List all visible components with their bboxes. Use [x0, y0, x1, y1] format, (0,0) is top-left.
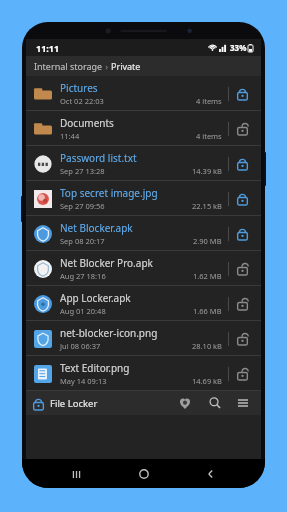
staticText: 22.15 kB	[192, 201, 222, 211]
button[interactable]: Top secret image.jpg	[26, 181, 261, 216]
button[interactable]: Documents	[26, 111, 261, 146]
staticText: 11:44	[60, 131, 80, 141]
staticText: 14.39 kB	[192, 166, 222, 176]
staticText: App Locker.apk	[60, 291, 131, 305]
staticText: Documents	[60, 116, 114, 130]
button[interactable]: Internal storage	[26, 56, 261, 76]
button[interactable]: Home	[130, 460, 158, 488]
button[interactable]: Upgrade	[174, 392, 196, 414]
button[interactable]: Unlocked	[229, 286, 255, 321]
button[interactable]: Menu	[232, 392, 254, 414]
button[interactable]: Pictures	[26, 76, 261, 111]
staticText: Private	[111, 60, 141, 72]
staticText: Sep 08 20:17	[60, 236, 105, 246]
staticText: 1.62 MB	[193, 271, 222, 281]
staticText: 11:11	[36, 42, 60, 54]
staticText: Sep 27 13:28	[60, 166, 105, 176]
staticText: Text Editor.png	[60, 361, 130, 375]
staticText: 14.69 kB	[192, 376, 222, 386]
button[interactable]: net-blocker-icon.png	[26, 321, 261, 356]
button[interactable]: Unlocked	[229, 356, 255, 391]
button[interactable]: Unlocked	[229, 111, 255, 146]
staticText: Aug 01 20:48	[60, 306, 106, 316]
button[interactable]: Recents	[62, 460, 90, 488]
staticText: ›	[103, 60, 111, 72]
staticText: Net Blocker Pro.apk	[60, 256, 153, 270]
button[interactable]: Back	[197, 460, 225, 488]
staticText: 4 items	[196, 131, 222, 141]
button[interactable]: Net Blocker Pro.apk	[26, 251, 261, 286]
staticText: Password list.txt	[60, 151, 137, 165]
button[interactable]: File Locker	[33, 397, 98, 410]
staticText: Sep 27 09:56	[60, 201, 105, 211]
staticText: Jul 08 06:37	[60, 341, 101, 351]
staticText: 33%	[230, 42, 247, 53]
button[interactable]: App Locker.apk	[26, 286, 261, 321]
button[interactable]: Unlocked	[229, 251, 255, 286]
staticText: Internal storage	[34, 60, 103, 72]
button[interactable]: Unlocked	[229, 321, 255, 356]
staticText: 1.66 MB	[193, 306, 222, 316]
button[interactable]: Net Blocker.apk	[26, 216, 261, 251]
staticText: Top secret image.jpg	[60, 186, 158, 200]
staticText: Oct 02 22:03	[60, 96, 104, 106]
staticText: Aug 27 18:16	[60, 271, 106, 281]
button[interactable]: Locked	[229, 146, 255, 181]
staticText: 2.90 MB	[193, 236, 222, 246]
button[interactable]: Search	[204, 392, 226, 414]
staticText: 4 items	[196, 96, 222, 106]
button[interactable]: Locked	[229, 216, 255, 251]
staticText: Pictures	[60, 81, 98, 95]
button[interactable]: Text Editor.png	[26, 356, 261, 391]
button[interactable]: Locked	[229, 181, 255, 216]
staticText: net-blocker-icon.png	[60, 326, 158, 340]
staticText: 28.10 kB	[192, 341, 222, 351]
staticText: File Locker	[50, 397, 98, 410]
button[interactable]: Password list.txt	[26, 146, 261, 181]
staticText: May 14 09:13	[60, 376, 107, 386]
button[interactable]: Locked	[229, 76, 255, 111]
staticText: Net Blocker.apk	[60, 221, 133, 235]
